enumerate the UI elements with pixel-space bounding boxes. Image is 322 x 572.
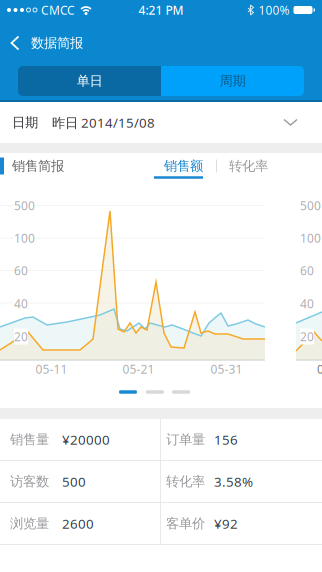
staticText: 40 <box>14 295 28 311</box>
staticText: 转化率 <box>166 473 205 490</box>
staticText: 日期 <box>12 114 38 131</box>
staticText: 周期 <box>219 73 245 89</box>
staticText: 订单量 <box>166 431 205 448</box>
staticText: 4:21 PM <box>138 2 183 18</box>
staticText: 40 <box>300 295 314 311</box>
staticText: 20 <box>14 328 28 344</box>
button[interactable]: 单日 <box>18 66 161 96</box>
staticText: 数据简报 <box>31 35 83 51</box>
staticText: 05-11 <box>35 361 67 377</box>
staticText: ¥92 <box>214 515 238 532</box>
staticText: 500 <box>300 197 321 213</box>
staticText: 昨日 2014/15/08 <box>52 114 155 131</box>
staticText: 浏览量 <box>10 515 49 532</box>
staticText: 60 <box>300 262 314 278</box>
staticText: 3.58% <box>214 473 253 490</box>
staticText: 转化率 <box>229 158 268 174</box>
staticText: 销售额 <box>164 158 203 174</box>
staticText: 05-31 <box>210 361 242 377</box>
button[interactable]: 周期 <box>161 66 304 96</box>
staticText: ¥20000 <box>62 431 110 448</box>
staticText: 500 <box>14 197 35 213</box>
staticText: 100 <box>300 230 321 246</box>
button[interactable]: 销售额 <box>164 153 203 179</box>
staticText: 100% <box>258 2 289 18</box>
staticText: 05-21 <box>122 361 154 377</box>
staticText: 05-11 <box>317 361 322 377</box>
staticText: 500 <box>62 473 86 490</box>
staticText: 60 <box>14 262 28 278</box>
staticText: 销售简报 <box>12 158 64 174</box>
staticText: 100 <box>14 230 35 246</box>
staticText: 单日 <box>76 73 102 89</box>
staticText: 20 <box>300 328 314 344</box>
button[interactable]: Back <box>0 36 19 49</box>
button[interactable]: 日期 <box>0 102 322 143</box>
staticText: CMCC <box>41 2 75 18</box>
staticText: 2600 <box>62 515 94 532</box>
button[interactable]: 转化率 <box>229 153 268 179</box>
staticText: 访客数 <box>10 473 49 490</box>
staticText: 156 <box>214 431 238 448</box>
staticText: 销售量 <box>10 431 49 448</box>
staticText: 客单价 <box>166 515 205 532</box>
